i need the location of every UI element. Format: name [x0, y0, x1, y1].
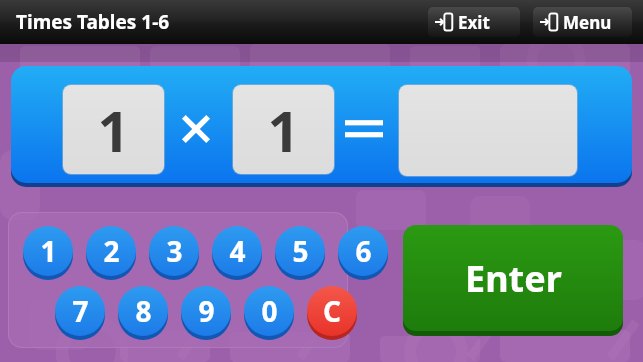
staticText: 1	[40, 232, 57, 270]
button[interactable]: 5	[275, 226, 325, 280]
staticText: 6	[355, 232, 372, 270]
staticText: 9	[198, 292, 215, 330]
button[interactable]: 2	[86, 226, 136, 280]
button[interactable]: 0	[244, 286, 294, 340]
staticText: 1	[267, 92, 300, 168]
button[interactable]: 3	[149, 226, 199, 280]
staticText: 8	[135, 292, 152, 330]
staticText: 3	[166, 232, 183, 270]
staticText: Enter	[465, 254, 562, 303]
button[interactable]: Menu	[533, 7, 632, 37]
other: Menu	[540, 12, 558, 32]
button[interactable]: 1	[23, 226, 73, 280]
button[interactable]: 4	[212, 226, 262, 280]
staticText: 4	[229, 232, 246, 270]
staticText: Exit	[458, 11, 490, 34]
button[interactable]: C	[307, 286, 357, 340]
staticText: Times Tables 1-6	[16, 9, 170, 35]
button[interactable]: 7	[55, 286, 105, 340]
staticText: 5	[292, 232, 309, 270]
staticText: 1	[97, 92, 130, 168]
button[interactable]: 8	[118, 286, 168, 340]
staticText: 0	[261, 292, 278, 330]
button[interactable]: Enter	[403, 225, 623, 336]
button[interactable]: Exit	[428, 7, 520, 37]
other: Exit	[435, 12, 453, 32]
staticText: 2	[103, 232, 120, 270]
staticText: 7	[72, 292, 89, 330]
staticText: C	[323, 292, 341, 330]
button[interactable]: 9	[181, 286, 231, 340]
button[interactable]: 6	[338, 226, 388, 280]
staticText: Menu	[563, 11, 612, 34]
